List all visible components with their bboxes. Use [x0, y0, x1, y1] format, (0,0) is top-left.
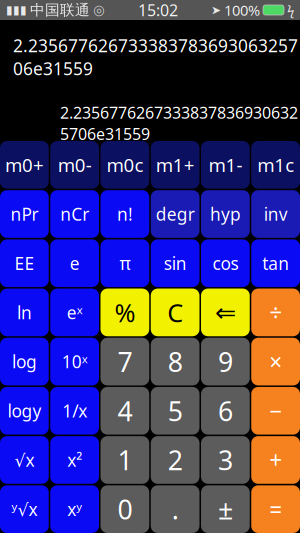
- staticText: 15:02: [138, 0, 178, 21]
- button[interactable]: 0: [100, 485, 149, 533]
- staticText: e: [70, 252, 80, 275]
- staticText: EE: [14, 252, 34, 275]
- staticText: 9: [218, 344, 233, 379]
- staticText: 100%: [224, 0, 260, 20]
- button[interactable]: m0c: [100, 141, 149, 189]
- button[interactable]: 6: [201, 387, 250, 435]
- button[interactable]: m0+: [0, 141, 49, 189]
- staticText: 2.2356776267333837836930632 5706e31559: [60, 102, 298, 144]
- staticText: ϟ: [287, 1, 294, 19]
- button[interactable]: x²: [50, 436, 99, 484]
- staticText: ±: [218, 491, 233, 527]
- button[interactable]: nCr: [50, 190, 99, 238]
- staticText: m0-: [58, 152, 92, 177]
- button[interactable]: 3: [201, 436, 250, 484]
- staticText: ʸ√x: [11, 498, 37, 521]
- button[interactable]: 8: [151, 338, 200, 385]
- staticText: xʸ: [67, 498, 82, 521]
- staticText: sin: [164, 252, 187, 275]
- button[interactable]: logy: [0, 387, 49, 435]
- button[interactable]: −: [251, 387, 300, 435]
- button[interactable]: EE: [0, 239, 49, 287]
- staticText: 0: [117, 491, 132, 527]
- staticText: 1/x: [62, 399, 87, 422]
- button[interactable]: log: [0, 338, 49, 385]
- staticText: 4: [117, 393, 132, 428]
- button[interactable]: +: [251, 436, 300, 484]
- staticText: 6: [218, 393, 233, 428]
- button[interactable]: 1: [100, 436, 149, 484]
- button[interactable]: 9: [201, 338, 250, 385]
- staticText: ×: [269, 346, 282, 377]
- staticText: log: [12, 350, 37, 373]
- button[interactable]: hyp: [201, 190, 250, 238]
- staticText: 2.235677626733383783693063257 06e31559: [13, 34, 298, 80]
- button[interactable]: .: [151, 485, 200, 533]
- staticText: 693063257e31559: [178, 191, 298, 211]
- staticText: nCr: [60, 202, 89, 225]
- staticText: ⇐: [215, 298, 236, 327]
- staticText: inv: [264, 202, 288, 225]
- button[interactable]: m1-: [201, 141, 250, 189]
- button[interactable]: ×: [251, 338, 300, 385]
- button[interactable]: √x: [0, 436, 49, 484]
- staticText: π: [119, 252, 130, 275]
- button[interactable]: 2: [151, 436, 200, 484]
- staticText: 69306325706e31559: [10, 191, 146, 211]
- button[interactable]: cos: [201, 239, 250, 287]
- staticText: m1c: [257, 152, 294, 177]
- staticText: tan: [262, 252, 289, 275]
- button[interactable]: ln: [0, 289, 49, 336]
- staticText: ÷: [269, 297, 282, 327]
- button[interactable]: nPr: [0, 190, 49, 238]
- staticText: m0+: [5, 152, 44, 177]
- staticText: 中国联通: [30, 1, 90, 19]
- button[interactable]: e: [50, 239, 99, 287]
- button[interactable]: C: [151, 289, 200, 336]
- button[interactable]: 4: [100, 387, 149, 435]
- button[interactable]: ÷: [251, 289, 300, 336]
- staticText: -2.235677626733383783: [161, 152, 298, 191]
- staticText: nPr: [10, 202, 38, 225]
- button[interactable]: inv: [251, 190, 300, 238]
- button[interactable]: eˣ: [50, 289, 99, 336]
- staticText: ◎: [93, 2, 105, 17]
- button[interactable]: ⇐: [201, 289, 250, 336]
- staticText: −: [269, 396, 282, 426]
- button[interactable]: m1c: [251, 141, 300, 189]
- button[interactable]: ʸ√x: [0, 485, 49, 533]
- button[interactable]: tan: [251, 239, 300, 287]
- staticText: hyp: [210, 202, 241, 225]
- button[interactable]: 5: [151, 387, 200, 435]
- button[interactable]: m0-: [50, 141, 99, 189]
- staticText: m1+: [156, 152, 195, 177]
- button[interactable]: 10ˣ: [50, 338, 99, 385]
- staticText: 8: [168, 344, 183, 379]
- staticText: 7: [117, 344, 132, 379]
- staticText: ▮▮▮: [6, 3, 27, 17]
- staticText: x²: [67, 448, 82, 471]
- button[interactable]: =: [251, 485, 300, 533]
- staticText: =: [269, 494, 282, 524]
- button[interactable]: sin: [151, 239, 200, 287]
- staticText: 2.235677626733383783: [6, 152, 146, 191]
- button[interactable]: 7: [100, 338, 149, 385]
- staticText: ➤: [211, 3, 221, 17]
- button[interactable]: n!: [100, 190, 149, 238]
- staticText: √x: [14, 448, 34, 471]
- staticText: m0c: [106, 152, 143, 177]
- staticText: .: [172, 491, 179, 527]
- staticText: 5: [168, 393, 183, 428]
- staticText: logy: [7, 399, 41, 422]
- button[interactable]: degr: [151, 190, 200, 238]
- button[interactable]: π: [100, 239, 149, 287]
- button[interactable]: 1/x: [50, 387, 99, 435]
- staticText: C: [167, 296, 183, 329]
- button[interactable]: %: [100, 289, 149, 336]
- button[interactable]: xʸ: [50, 485, 99, 533]
- button[interactable]: ±: [201, 485, 250, 533]
- staticText: n!: [117, 202, 133, 225]
- staticText: eˣ: [67, 301, 83, 324]
- button[interactable]: m1+: [151, 141, 200, 189]
- staticText: 3: [218, 442, 233, 478]
